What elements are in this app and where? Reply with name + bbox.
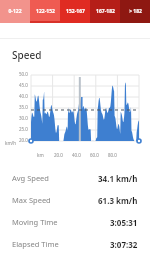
staticText: 152-167: [66, 8, 85, 15]
other: Speed over distance chart: [0, 69, 150, 163]
staticText: 60.0: [90, 152, 99, 158]
button[interactable]: > 182: [120, 0, 150, 23]
staticText: Speed: [12, 48, 42, 62]
button[interactable]: Elapsed Time: [0, 233, 150, 255]
staticText: 20.0: [54, 152, 63, 158]
staticText: 167-182: [96, 8, 115, 15]
staticText: 45.0: [19, 82, 28, 88]
staticText: 61.3 km/h: [98, 195, 138, 206]
button[interactable]: 167-182: [90, 0, 120, 23]
button[interactable]: Max Speed: [0, 189, 150, 211]
button[interactable]: Avg Speed: [0, 167, 150, 189]
staticText: km: [37, 152, 44, 158]
staticText: 20.0: [19, 137, 28, 143]
staticText: 3:07:32: [110, 239, 138, 250]
staticText: > 182: [129, 8, 142, 15]
staticText: 40.0: [19, 93, 28, 99]
button[interactable]: Moving Time: [0, 211, 150, 233]
staticText: 3:05:31: [110, 217, 138, 228]
staticText: Moving Time: [12, 217, 58, 227]
staticText: 122-152: [36, 8, 55, 15]
staticText: km/h: [5, 140, 17, 146]
button[interactable]: 152-167: [60, 0, 90, 23]
button[interactable]: 0-122: [0, 0, 30, 23]
staticText: 30.0: [19, 115, 28, 121]
staticText: 50.0: [19, 71, 28, 77]
staticText: 34.1 km/h: [98, 173, 138, 184]
staticText: 40.0: [72, 152, 81, 158]
button[interactable]: 122-152: [30, 0, 60, 23]
staticText: Avg Speed: [12, 173, 49, 183]
staticText: Elapsed Time: [12, 239, 59, 249]
staticText: 35.0: [19, 104, 28, 110]
staticText: 80.0: [108, 152, 117, 158]
staticText: 25.0: [19, 126, 28, 132]
staticText: Max Speed: [12, 195, 51, 205]
staticText: 0-122: [8, 8, 22, 15]
